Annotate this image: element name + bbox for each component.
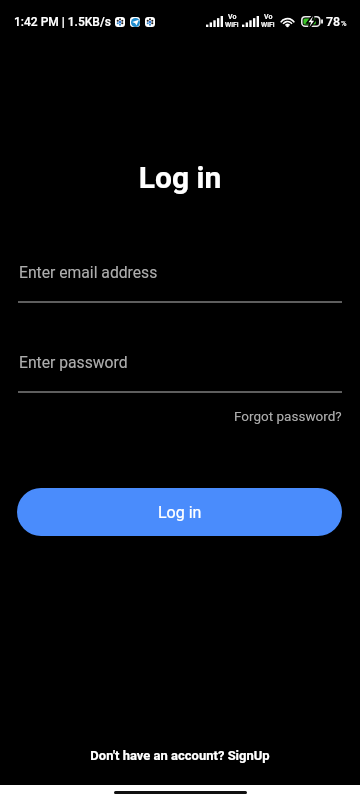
staticText: Enter email address: [19, 263, 158, 281]
staticText: Vo: [228, 13, 237, 21]
button[interactable]: Don't have an account? SignUp: [0, 740, 360, 770]
staticText: Vo: [264, 13, 273, 21]
staticText: Log in: [0, 160, 360, 195]
staticText: WiFi: [225, 21, 239, 29]
button[interactable]: Enter password: [18, 349, 342, 393]
button[interactable]: Forgot password?: [226, 402, 350, 430]
staticText: Log in: [158, 503, 202, 522]
staticText: Enter password: [19, 353, 128, 371]
button[interactable]: Enter email address: [18, 259, 342, 303]
button[interactable]: Log in: [17, 488, 342, 536]
staticText: WiFi: [261, 21, 275, 29]
staticText: 78: [326, 14, 341, 29]
staticText: %: [341, 19, 347, 28]
staticText: Forgot password?: [234, 408, 342, 424]
staticText: Don't have an account? SignUp: [0, 748, 360, 763]
staticText: 1:42 PM | 1.5KB/s: [14, 15, 111, 29]
